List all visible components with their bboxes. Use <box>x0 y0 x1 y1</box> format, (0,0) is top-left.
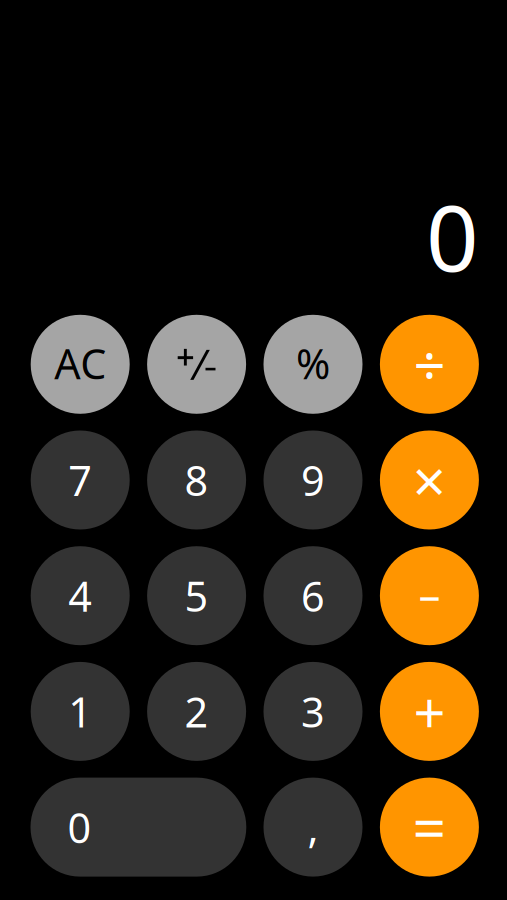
staticText: 7 <box>68 453 92 507</box>
staticText: % <box>296 336 330 391</box>
button[interactable]: 4 <box>30 546 130 645</box>
staticText: 0 <box>426 175 479 297</box>
staticText: 1 <box>68 684 92 739</box>
button[interactable]: 8 <box>147 430 246 529</box>
button[interactable]: = <box>380 778 479 877</box>
staticText: = <box>412 788 446 866</box>
staticText: 6 <box>301 568 325 623</box>
button[interactable]: 5 <box>147 546 246 645</box>
button[interactable]: AC <box>30 315 130 414</box>
staticText: 9 <box>301 453 325 507</box>
button[interactable]: 1 <box>30 662 130 761</box>
button[interactable]: 9 <box>263 430 363 529</box>
staticText: 0 <box>67 800 91 855</box>
button[interactable]: , <box>263 778 363 877</box>
staticText: AC <box>54 336 106 391</box>
button[interactable]: ÷ <box>380 315 479 414</box>
button[interactable]: % <box>263 315 363 414</box>
button[interactable]: 0 <box>30 778 246 877</box>
staticText: 8 <box>185 453 209 507</box>
staticText: , <box>307 800 318 855</box>
staticText: 2 <box>185 684 209 739</box>
button[interactable]: 3 <box>263 662 363 761</box>
button[interactable]: Plus or minus <box>147 315 246 414</box>
staticText: – <box>418 564 440 623</box>
staticText: 4 <box>68 568 92 623</box>
staticText: × <box>412 441 446 519</box>
button[interactable]: × <box>380 430 479 529</box>
staticText: 5 <box>185 568 209 623</box>
staticText: 3 <box>301 684 325 739</box>
staticText: ÷ <box>413 327 445 401</box>
button[interactable]: 6 <box>263 546 363 645</box>
button[interactable]: 2 <box>147 662 246 761</box>
button[interactable]: – <box>380 546 479 645</box>
button[interactable]: 7 <box>30 430 130 529</box>
button[interactable]: + <box>380 662 479 761</box>
staticText: + <box>413 674 445 749</box>
